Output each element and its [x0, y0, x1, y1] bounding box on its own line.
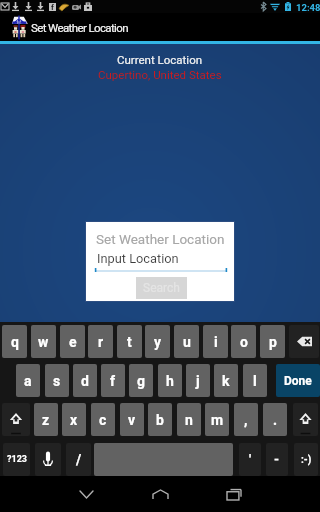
- staticText: d: [81, 373, 89, 389]
- button[interactable]: v: [120, 403, 144, 436]
- button[interactable]: b: [148, 403, 172, 436]
- staticText: u: [183, 334, 191, 350]
- button[interactable]: Voice input: [35, 443, 61, 476]
- staticText: Cupertino, United States: [98, 68, 222, 81]
- staticText: e: [69, 334, 77, 350]
- button[interactable]: Search: [136, 277, 187, 299]
- staticText: ,: [244, 412, 248, 428]
- button[interactable]: g: [129, 364, 153, 397]
- button[interactable]: Done: [276, 364, 320, 397]
- button[interactable]: Shift: [2, 403, 30, 436]
- staticText: p: [269, 334, 277, 350]
- staticText: Search: [143, 281, 180, 295]
- button[interactable]: m: [205, 403, 229, 436]
- button[interactable]: t: [117, 325, 142, 358]
- staticText: b: [156, 412, 164, 428]
- staticText: ': [249, 452, 252, 467]
- staticText: k: [222, 373, 230, 389]
- staticText: h: [166, 373, 174, 389]
- button[interactable]: .: [263, 403, 287, 436]
- staticText: x: [70, 412, 78, 428]
- button[interactable]: ': [239, 443, 261, 476]
- button[interactable]: a: [16, 364, 40, 397]
- button[interactable]: h: [158, 364, 182, 397]
- staticText: o: [240, 334, 248, 350]
- button[interactable]: Home: [142, 482, 178, 506]
- button[interactable]: u: [174, 325, 199, 358]
- staticText: g: [137, 373, 145, 389]
- staticText: f: [51, 3, 54, 11]
- staticText: z: [42, 412, 50, 428]
- staticText: Done: [284, 374, 312, 388]
- staticText: .: [273, 412, 278, 428]
- button[interactable]: Shift: [293, 403, 318, 436]
- staticText: s: [53, 373, 61, 389]
- staticText: -: [274, 452, 280, 467]
- staticText: m: [211, 412, 224, 428]
- button[interactable]: s: [45, 364, 69, 397]
- staticText: q: [11, 334, 19, 350]
- button[interactable]: ,: [234, 403, 258, 436]
- staticText: n: [185, 412, 193, 428]
- button[interactable]: z: [34, 403, 58, 436]
- staticText: ?123: [7, 454, 27, 465]
- staticText: l: [253, 373, 257, 389]
- staticText: 12:48: [296, 2, 320, 13]
- button[interactable]: p: [260, 325, 285, 358]
- button[interactable]: x: [62, 403, 86, 436]
- staticText: Set Weather Location: [96, 231, 225, 247]
- staticText: Set Weather Location: [31, 21, 128, 34]
- button[interactable]: Recent apps: [216, 482, 252, 506]
- button[interactable]: o: [231, 325, 256, 358]
- button[interactable]: j: [186, 364, 210, 397]
- button[interactable]: Delete: [289, 325, 319, 358]
- button[interactable]: e: [60, 325, 85, 358]
- staticText: w: [38, 334, 49, 350]
- button[interactable]: k: [214, 364, 238, 397]
- button[interactable]: l: [243, 364, 267, 397]
- staticText: Current Location: [117, 53, 203, 66]
- button[interactable]: /: [66, 443, 91, 476]
- button[interactable]: ?123: [3, 443, 30, 476]
- button[interactable]: r: [88, 325, 113, 358]
- staticText: a: [24, 373, 32, 389]
- button[interactable]: c: [91, 403, 115, 436]
- staticText: :-): [301, 454, 312, 466]
- staticText: i: [214, 334, 218, 350]
- button[interactable]: f: [101, 364, 125, 397]
- button[interactable]: i: [203, 325, 228, 358]
- button[interactable]: Back: [68, 482, 104, 506]
- button[interactable]: n: [177, 403, 201, 436]
- button[interactable]: d: [73, 364, 97, 397]
- staticText: t: [127, 334, 132, 350]
- button[interactable]: w: [31, 325, 56, 358]
- staticText: f: [110, 373, 116, 389]
- staticText: j: [196, 373, 200, 389]
- staticText: y: [154, 334, 162, 350]
- staticText: /: [76, 452, 82, 468]
- button[interactable]: -: [266, 443, 288, 476]
- button[interactable]: y: [145, 325, 170, 358]
- staticText: v: [128, 412, 136, 428]
- staticText: r: [98, 334, 104, 350]
- staticText: Input Location: [97, 251, 179, 266]
- button[interactable]: q: [2, 325, 27, 358]
- staticText: c: [99, 412, 107, 428]
- button[interactable]: :-): [294, 443, 318, 476]
